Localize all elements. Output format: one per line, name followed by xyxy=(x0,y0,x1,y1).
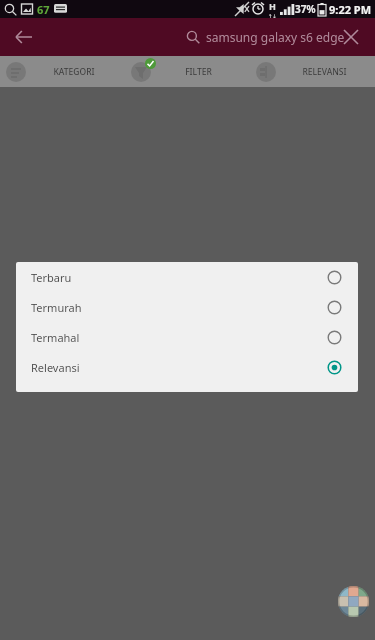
staticText: samsung galaxy s6 edge xyxy=(206,29,345,45)
button[interactable]: FILTER xyxy=(125,56,250,87)
staticText: Termurah xyxy=(31,300,82,315)
button[interactable]: Termahal xyxy=(16,322,358,352)
staticText: 9:22 PM xyxy=(329,2,372,17)
staticText: KATEGORI xyxy=(53,66,95,78)
button[interactable]: Relevansi xyxy=(16,352,358,382)
staticText: Termahal xyxy=(31,330,80,345)
staticText: H xyxy=(269,0,276,12)
staticText: Relevansi xyxy=(31,360,80,375)
staticText: 67 xyxy=(37,2,50,17)
staticText: FILTER xyxy=(185,66,212,78)
button[interactable]: Back xyxy=(8,21,40,53)
button[interactable]: Clear search xyxy=(335,21,367,53)
button[interactable]: KATEGORI xyxy=(0,56,125,87)
staticText: Terbaru xyxy=(31,270,72,285)
button[interactable]: Chat head xyxy=(338,586,369,617)
button[interactable]: Termurah xyxy=(16,292,358,322)
staticText: ↑↓ xyxy=(268,13,277,18)
staticText: 37% xyxy=(295,2,316,16)
staticText: RELEVANSI xyxy=(302,66,347,78)
button[interactable]: Terbaru xyxy=(16,262,358,292)
button[interactable]: RELEVANSI xyxy=(250,56,375,87)
